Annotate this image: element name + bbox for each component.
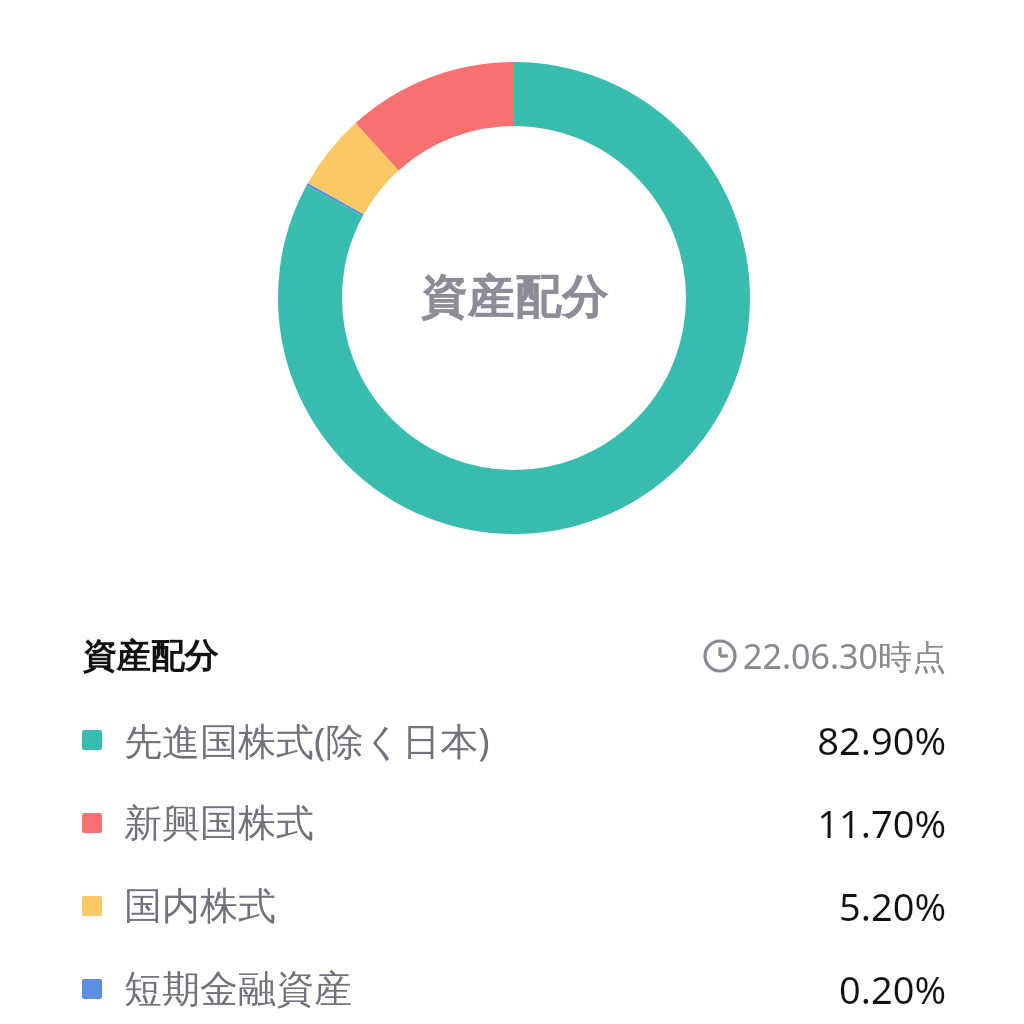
- button[interactable]: 国内株式: [0, 864, 1024, 947]
- staticText: 82.90%: [817, 714, 946, 766]
- button[interactable]: 先進国株式(除く日本): [0, 698, 1024, 781]
- staticText: 0.20%: [839, 963, 946, 1015]
- staticText: 資産配分: [82, 635, 218, 678]
- staticText: 22.06.30時点: [743, 633, 946, 679]
- staticText: 新興国株式: [124, 799, 314, 847]
- staticText: 11.70%: [817, 797, 946, 849]
- button[interactable]: 短期金融資産: [0, 947, 1024, 1024]
- staticText: 国内株式: [124, 882, 276, 930]
- staticText: 資産配分: [420, 269, 608, 327]
- staticText: 5.20%: [839, 880, 946, 932]
- button[interactable]: 新興国株式: [0, 781, 1024, 864]
- button[interactable]: 資産配分 ドーナツグラフ: [278, 62, 750, 534]
- staticText: 先進国株式(除く日本): [124, 714, 490, 766]
- staticText: 短期金融資産: [124, 965, 352, 1013]
